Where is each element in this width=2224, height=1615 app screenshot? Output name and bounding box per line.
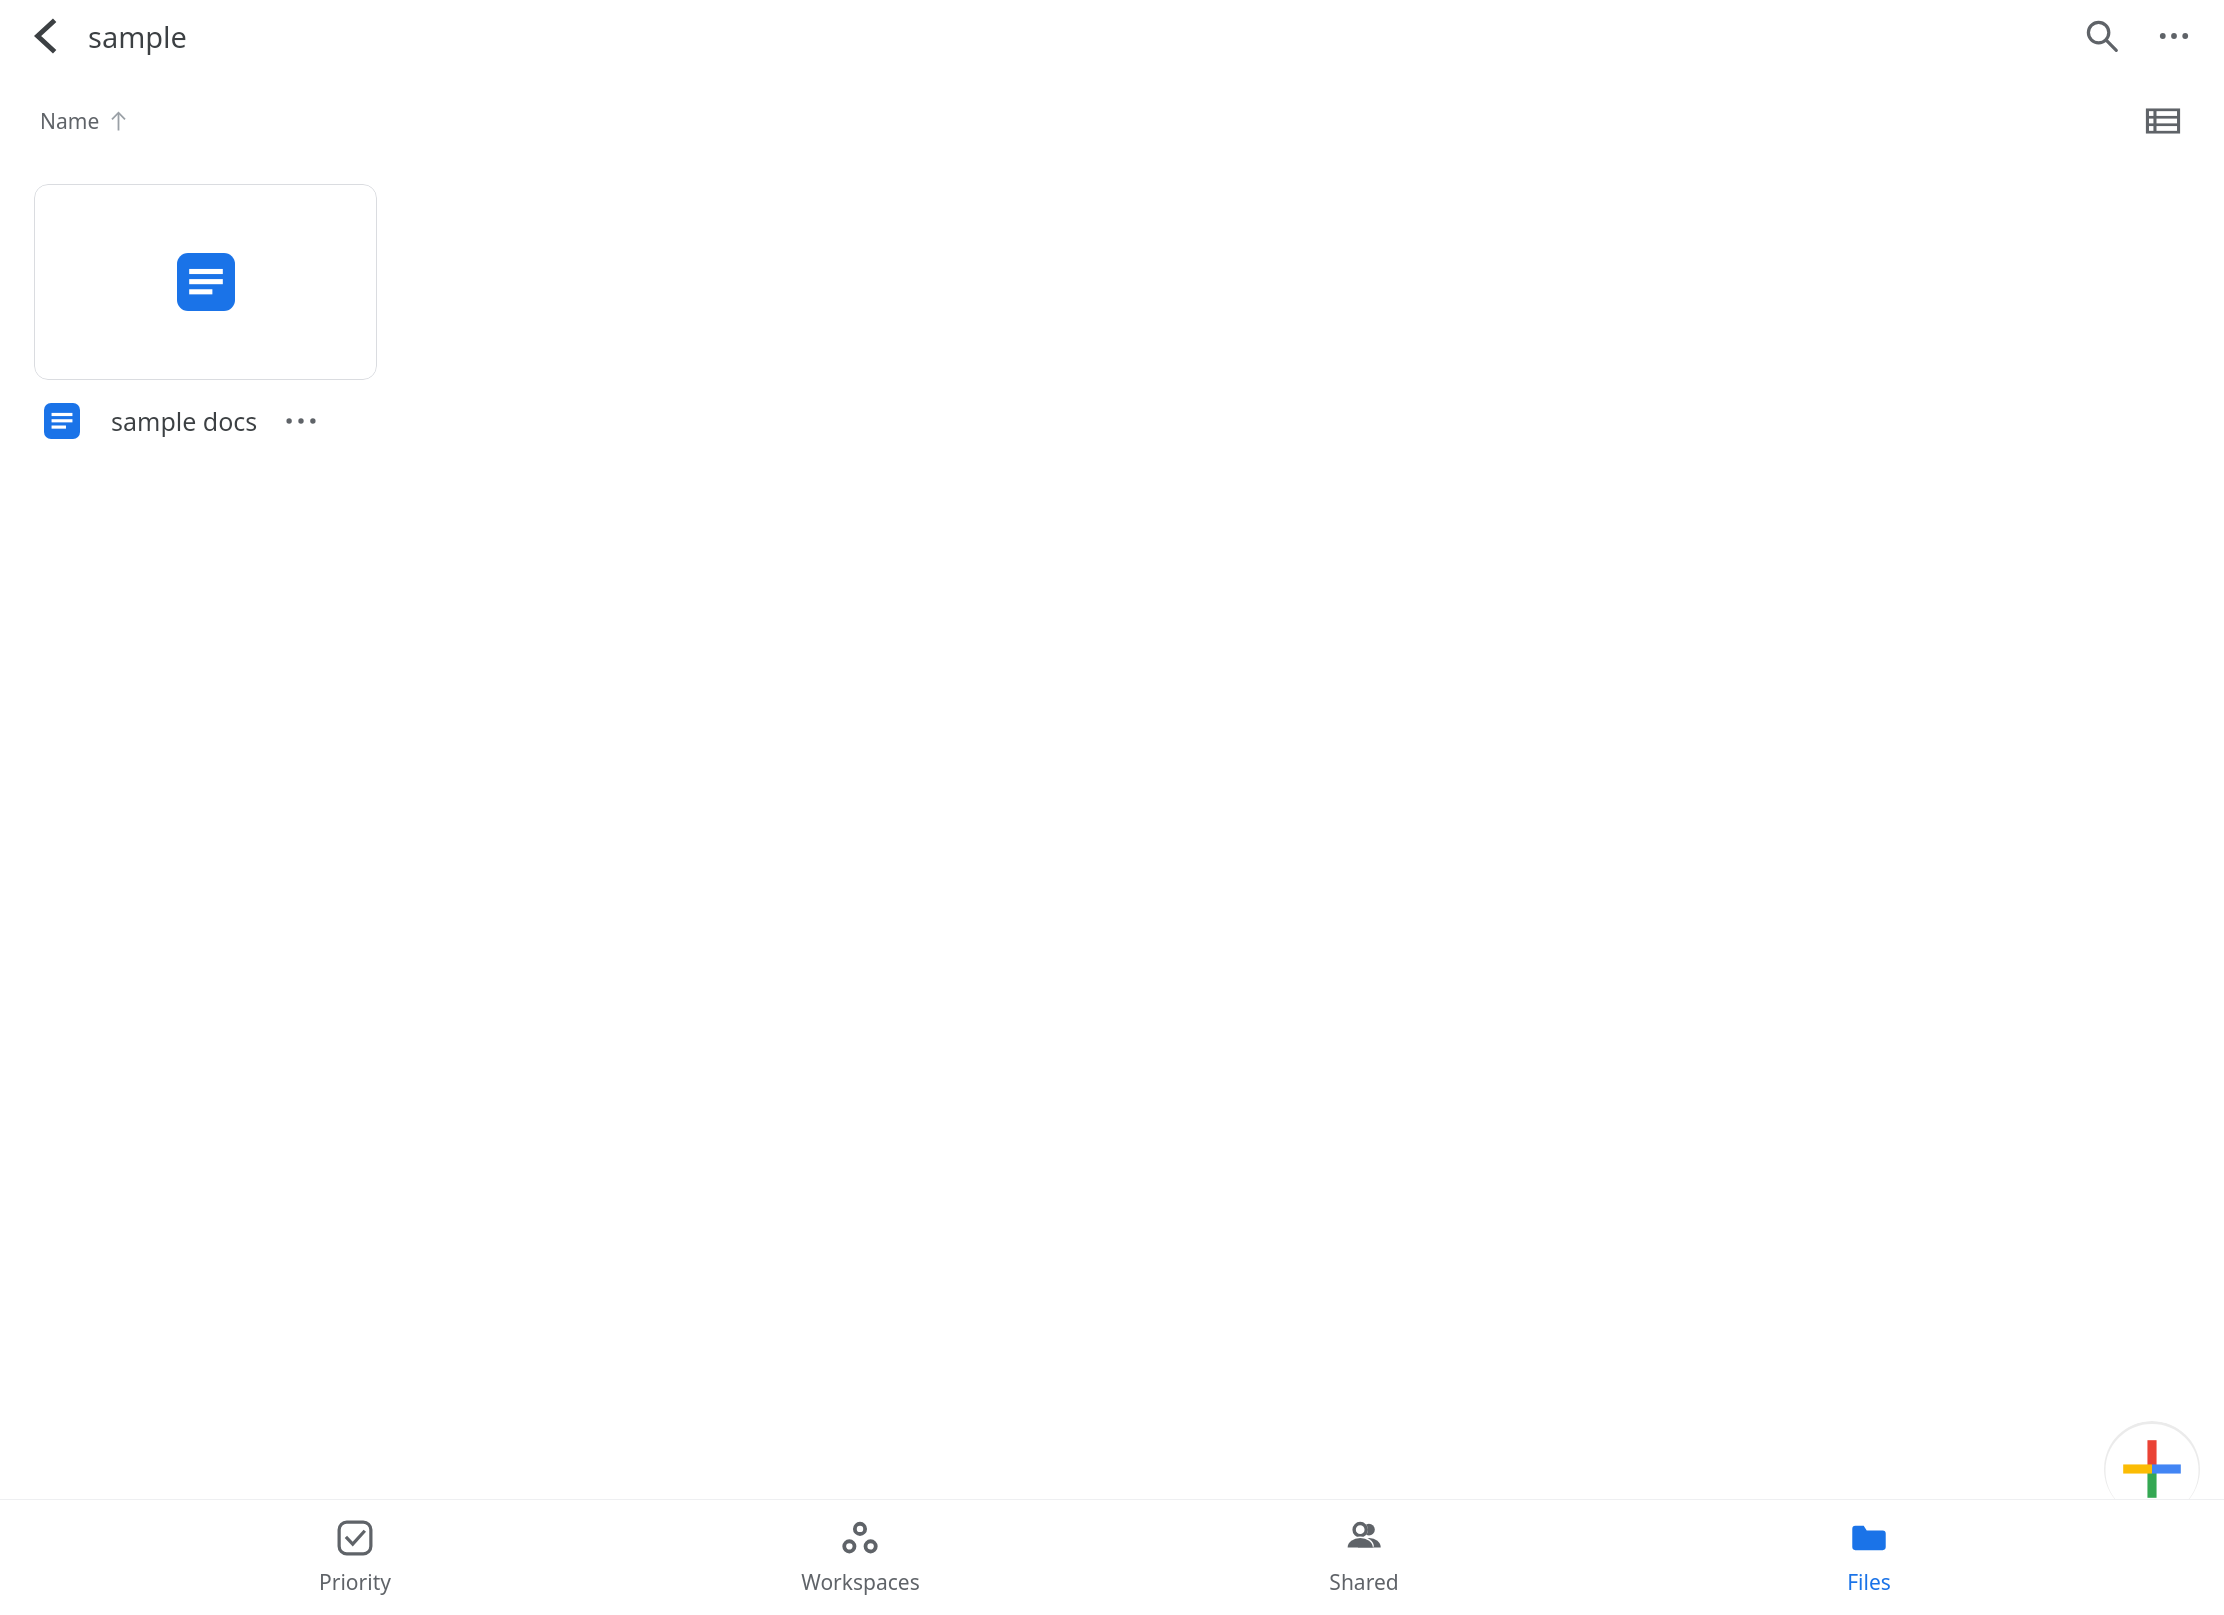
button[interactable]: Shared [1214,1513,1514,1603]
button[interactable]: Priority [205,1513,505,1603]
button[interactable]: Files [1719,1513,2019,1603]
button[interactable]: Switch to list view [2132,90,2194,152]
button[interactable]: More options [2138,0,2210,72]
staticText: Shared [1329,1568,1399,1597]
staticText: Name [40,107,100,136]
staticText: sample docs [111,404,258,438]
staticText: sample [88,17,187,56]
button[interactable]: Search [2066,0,2138,72]
button[interactable]: More actions for sample docs [278,398,324,444]
button[interactable]: Create new [2104,1421,2200,1517]
button[interactable]: Workspaces [710,1513,1010,1603]
staticText: Workspaces [801,1568,920,1597]
button[interactable]: Back [12,2,80,70]
button[interactable]: Name [34,101,135,142]
staticText: Files [1847,1568,1891,1597]
button[interactable]: sample docs [34,184,377,444]
staticText: Priority [319,1568,391,1597]
